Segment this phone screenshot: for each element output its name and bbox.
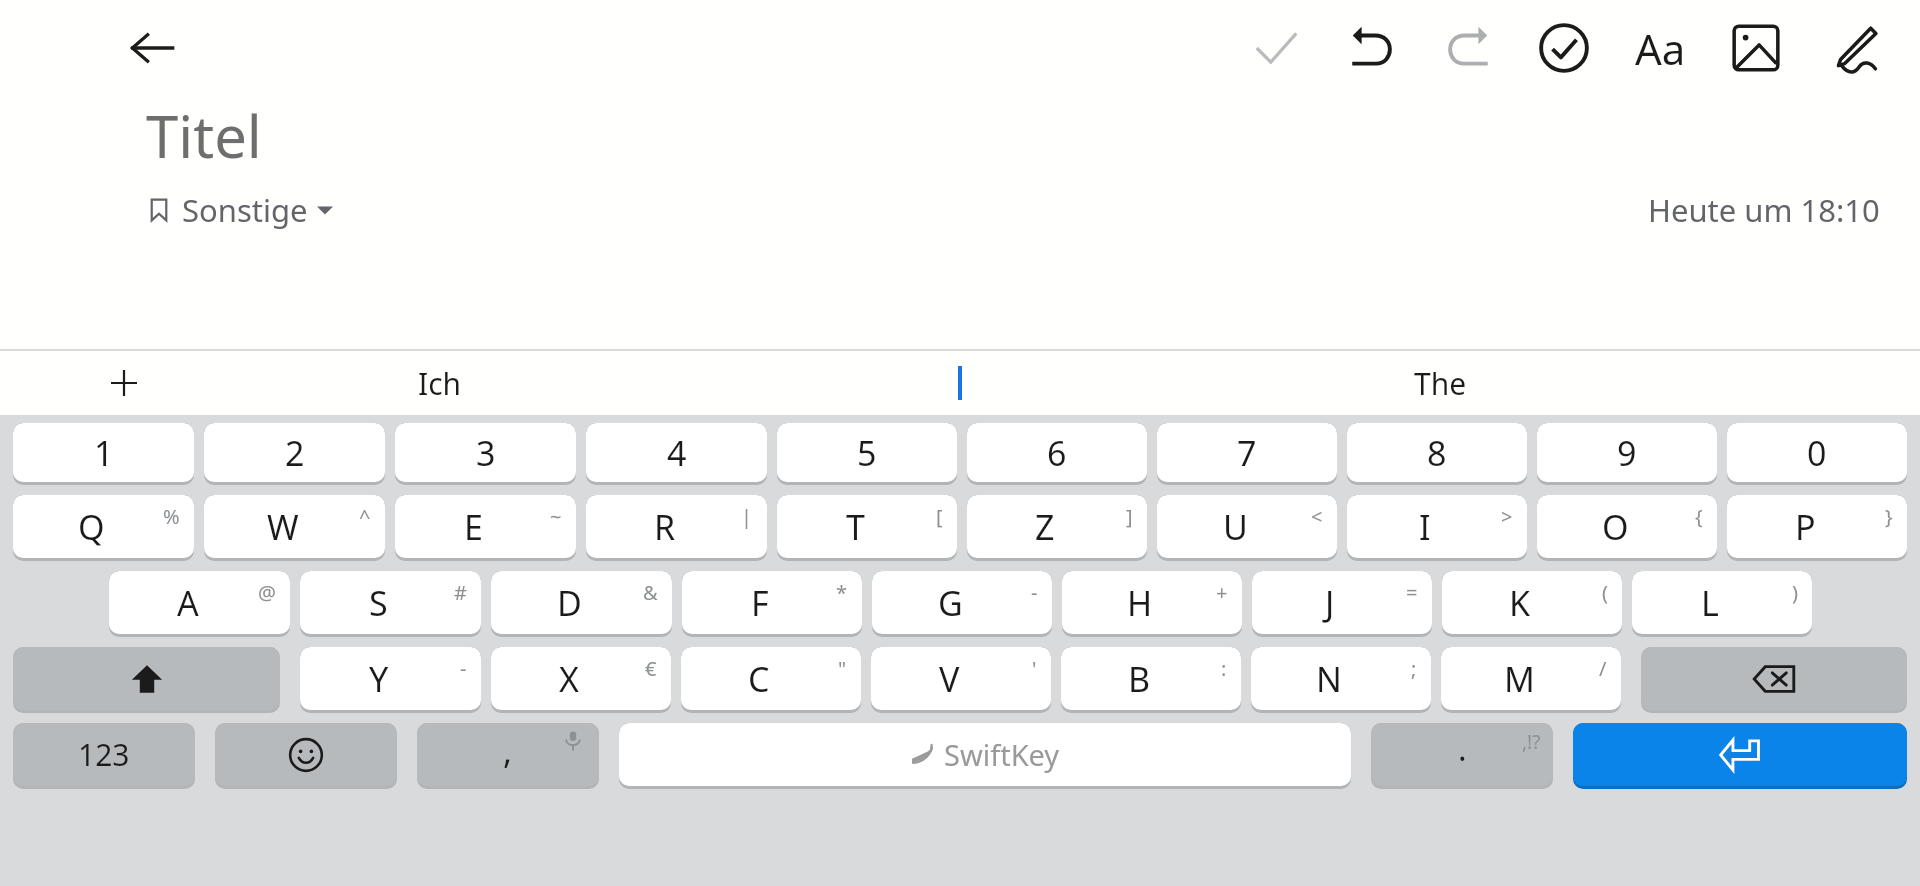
- button[interactable]: Checklist: [1516, 0, 1612, 96]
- button[interactable]: Back: [118, 14, 186, 82]
- button[interactable]: F: [682, 571, 862, 634]
- button[interactable]: B: [1061, 647, 1241, 710]
- staticText: S: [369, 580, 388, 626]
- staticText: Z: [1035, 504, 1055, 550]
- staticText: L: [1701, 580, 1719, 626]
- staticText: 0: [1807, 430, 1827, 476]
- staticText: G: [938, 580, 963, 626]
- button[interactable]: Undo: [1324, 0, 1420, 96]
- staticText: +: [1216, 579, 1228, 606]
- button[interactable]: X: [491, 647, 671, 710]
- staticText: 7: [1237, 430, 1257, 476]
- button[interactable]: 0: [1727, 423, 1907, 482]
- button[interactable]: C: [681, 647, 861, 710]
- staticText: T: [846, 504, 865, 550]
- staticText: K: [1509, 580, 1531, 626]
- button[interactable]: V: [871, 647, 1051, 710]
- button[interactable]: 123: [13, 723, 195, 786]
- button[interactable]: Emoji: [215, 723, 397, 786]
- button[interactable]: Aa: [1612, 0, 1708, 96]
- button[interactable]: 3: [395, 423, 576, 482]
- staticText: B: [1128, 656, 1151, 702]
- button[interactable]: I: [1347, 495, 1527, 558]
- button[interactable]: Z: [967, 495, 1147, 558]
- button[interactable]: Insert image: [1708, 0, 1804, 96]
- staticText: 9: [1617, 430, 1637, 476]
- button[interactable]: W: [204, 495, 385, 558]
- button[interactable]: Done: [1228, 0, 1324, 96]
- staticText: ): [1792, 579, 1798, 606]
- button[interactable]: H: [1062, 571, 1242, 634]
- button[interactable]: K: [1442, 571, 1622, 634]
- staticText: -: [1031, 579, 1038, 606]
- staticText: J: [1325, 580, 1335, 626]
- staticText: >: [1501, 503, 1513, 530]
- staticText: ;: [1411, 655, 1417, 682]
- staticText: E: [464, 504, 483, 550]
- staticText: €: [645, 655, 657, 682]
- button[interactable]: J: [1252, 571, 1432, 634]
- button[interactable]: S: [300, 571, 481, 634]
- button[interactable]: More options: [100, 359, 148, 407]
- button[interactable]: Space: [619, 723, 1351, 786]
- button[interactable]: R: [586, 495, 767, 558]
- button[interactable]: 5: [777, 423, 957, 482]
- staticText: ': [1032, 655, 1037, 682]
- button[interactable]: M: [1441, 647, 1621, 710]
- button[interactable]: .: [1371, 723, 1553, 786]
- button[interactable]: 8: [1347, 423, 1527, 482]
- staticText: #: [454, 579, 467, 606]
- staticText: P: [1795, 504, 1816, 550]
- staticText: .: [1458, 727, 1467, 771]
- button[interactable]: A: [109, 571, 290, 634]
- button[interactable]: Comma and voice input: [417, 723, 599, 786]
- button[interactable]: 6: [967, 423, 1147, 482]
- staticText: %: [163, 503, 180, 530]
- staticText: ": [838, 655, 847, 682]
- staticText: N: [1316, 656, 1342, 702]
- button[interactable]: 2: [204, 423, 385, 482]
- staticText: Q: [78, 504, 105, 550]
- button[interactable]: 4: [586, 423, 767, 482]
- button[interactable]: Enter: [1573, 723, 1907, 786]
- button[interactable]: The: [1300, 351, 1580, 415]
- button[interactable]: D: [491, 571, 672, 634]
- staticText: 5: [857, 430, 877, 476]
- staticText: }: [1885, 503, 1893, 530]
- staticText: 8: [1427, 430, 1447, 476]
- staticText: (: [1602, 579, 1608, 606]
- button[interactable]: P: [1727, 495, 1907, 558]
- staticText: /: [1599, 655, 1607, 682]
- button[interactable]: Q: [13, 495, 194, 558]
- button[interactable]: 1: [13, 423, 194, 482]
- staticText: &: [643, 579, 658, 606]
- staticText: Titel: [146, 96, 262, 175]
- button[interactable]: 7: [1157, 423, 1337, 482]
- staticText: Sonstige: [182, 189, 308, 231]
- staticText: 3: [476, 430, 496, 476]
- button[interactable]: N: [1251, 647, 1431, 710]
- staticText: The: [1414, 363, 1467, 404]
- button[interactable]: G: [872, 571, 1052, 634]
- staticText: 123: [78, 734, 130, 775]
- button[interactable]: T: [777, 495, 957, 558]
- button[interactable]: Redo: [1420, 0, 1516, 96]
- button[interactable]: U: [1157, 495, 1337, 558]
- staticText: W: [267, 504, 299, 550]
- button[interactable]: O: [1537, 495, 1717, 558]
- button[interactable]: E: [395, 495, 576, 558]
- staticText: *: [836, 579, 848, 606]
- staticText: R: [654, 504, 676, 550]
- button[interactable]: Sonstige: [146, 189, 333, 231]
- button[interactable]: Ich: [300, 351, 580, 415]
- button[interactable]: Shift: [13, 647, 280, 710]
- staticText: A: [177, 580, 199, 626]
- button[interactable]: Y: [300, 647, 481, 710]
- staticText: H: [1127, 580, 1153, 626]
- staticText: Aa: [1635, 20, 1686, 77]
- button[interactable]: L: [1632, 571, 1812, 634]
- button[interactable]: [810, 351, 1110, 415]
- button[interactable]: 9: [1537, 423, 1717, 482]
- button[interactable]: Draw: [1804, 0, 1900, 96]
- button[interactable]: Backspace: [1641, 647, 1907, 710]
